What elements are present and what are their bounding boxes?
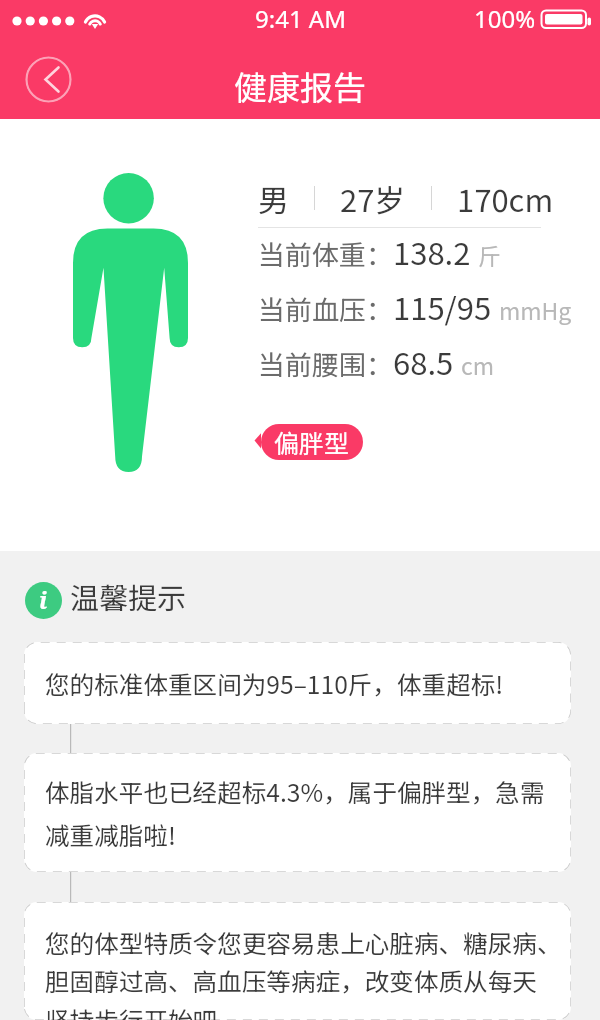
staticText: 100% <box>474 2 536 35</box>
staticText: cm <box>461 348 495 381</box>
staticText: 当前血压： <box>258 289 393 328</box>
button[interactable]: 您的标准体重区间为95–110斤，体重超标! <box>24 642 571 724</box>
staticText: 斤 <box>478 238 501 271</box>
staticText: 您的标准体重区间为95–110斤，体重超标! <box>45 665 504 701</box>
staticText: 27岁 <box>340 176 406 220</box>
staticText: 170cm <box>457 176 554 220</box>
staticText: 体脂水平也已经超标4.3%，属于偏胖型，急需 减重减脂啦! <box>45 773 545 852</box>
staticText: 9:41 AM <box>255 2 346 35</box>
staticText: 男 <box>258 176 289 220</box>
staticText: 当前腰围： <box>258 344 393 383</box>
staticText: 115/95 <box>393 284 492 329</box>
button[interactable]: Back <box>25 56 72 103</box>
staticText: 偏胖型 <box>274 424 350 460</box>
staticText: 健康报告 <box>234 62 366 110</box>
staticText: 138.2 <box>393 229 471 274</box>
staticText: i <box>39 584 48 615</box>
button[interactable]: 体脂水平也已经超标4.3%，属于偏胖型，急需 减重减脂啦! <box>24 753 571 872</box>
staticText: mmHg <box>499 293 572 326</box>
staticText: 68.5 <box>393 339 454 384</box>
staticText: 当前体重： <box>258 234 393 273</box>
staticText: 温馨提示 <box>70 575 187 617</box>
staticText: 您的体型特质令您更容易患上心脏病、糖尿病、 胆固醇过高、高血压等病症，改变体质从… <box>45 924 562 1020</box>
button[interactable]: 您的体型特质令您更容易患上心脏病、糖尿病、 胆固醇过高、高血压等病症，改变体质从… <box>24 902 571 1020</box>
button[interactable]: 偏胖型 <box>254 424 363 460</box>
